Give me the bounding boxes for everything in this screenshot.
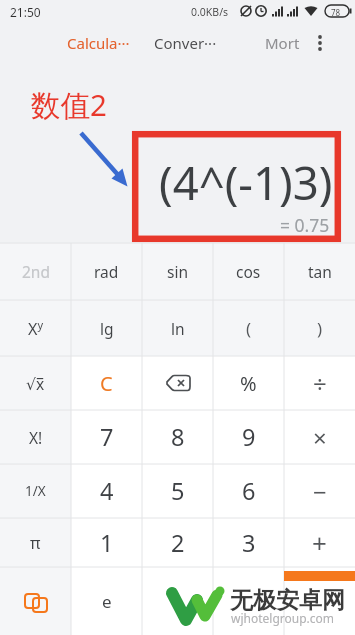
button[interactable]: 4 bbox=[71, 464, 142, 518]
button[interactable] bbox=[308, 28, 332, 58]
staticText: π bbox=[30, 532, 41, 554]
button[interactable]: ln bbox=[142, 300, 213, 356]
staticText: 3 bbox=[242, 527, 256, 559]
staticText: ) bbox=[317, 317, 323, 340]
staticText: 5 bbox=[171, 475, 185, 507]
button[interactable]: − bbox=[284, 464, 355, 518]
staticText: ( bbox=[246, 317, 252, 340]
button[interactable]: X! bbox=[0, 410, 71, 464]
button[interactable]: π bbox=[0, 518, 71, 567]
staticText: Xy bbox=[28, 317, 43, 339]
staticText: 6 bbox=[242, 475, 256, 507]
staticText: 78 bbox=[331, 7, 341, 18]
button[interactable]: 9 bbox=[213, 410, 284, 464]
button[interactable]: lg bbox=[71, 300, 142, 356]
button[interactable]: tan bbox=[284, 243, 355, 300]
button[interactable]: + bbox=[284, 518, 355, 567]
button[interactable]: Conver··· bbox=[140, 28, 230, 58]
staticText: ln bbox=[171, 318, 185, 339]
button[interactable]: rad bbox=[71, 243, 142, 300]
staticText: 2 bbox=[171, 527, 185, 559]
button[interactable]: cos bbox=[213, 243, 284, 300]
staticText: 21:50 bbox=[10, 4, 41, 20]
staticText: Conver··· bbox=[154, 33, 217, 53]
button[interactable]: C bbox=[71, 356, 142, 410]
staticText: Calcula··· bbox=[67, 33, 130, 53]
staticText: − bbox=[313, 475, 327, 508]
button[interactable]: 1 bbox=[71, 518, 142, 567]
button[interactable]: e bbox=[71, 567, 142, 635]
staticText: 1 bbox=[100, 527, 114, 559]
staticText: (4^(-1)3) bbox=[159, 151, 333, 213]
button[interactable]: sin bbox=[142, 243, 213, 300]
staticText: Mort bbox=[265, 33, 300, 53]
button[interactable]: 6 bbox=[213, 464, 284, 518]
staticText: 9 bbox=[242, 421, 256, 453]
staticText: C bbox=[100, 370, 113, 397]
button[interactable]: Xy bbox=[0, 300, 71, 356]
button[interactable] bbox=[0, 567, 71, 635]
button[interactable]: Calcula··· bbox=[48, 28, 148, 58]
staticText: × bbox=[313, 421, 327, 454]
staticText: 4 bbox=[100, 475, 114, 507]
button[interactable]: % bbox=[213, 356, 284, 410]
button[interactable]: 8 bbox=[142, 410, 213, 464]
staticText: = 0.75 bbox=[280, 213, 330, 237]
staticText: 0.0KB/s bbox=[191, 5, 229, 19]
button[interactable]: ( bbox=[213, 300, 284, 356]
staticText: % bbox=[240, 370, 257, 397]
button[interactable]: ÷ bbox=[284, 356, 355, 410]
staticText: tan bbox=[308, 261, 332, 282]
staticText: 1/X bbox=[25, 482, 46, 500]
staticText: cos bbox=[236, 261, 261, 282]
staticText: e bbox=[102, 590, 112, 613]
staticText: lg bbox=[100, 318, 114, 339]
staticText: 无极安卓网 bbox=[230, 586, 345, 615]
button[interactable]: 3 bbox=[213, 518, 284, 567]
staticText: 7 bbox=[100, 421, 114, 453]
button[interactable]: 1/X bbox=[0, 464, 71, 518]
staticText: + bbox=[312, 525, 327, 560]
staticText: sin bbox=[167, 261, 189, 282]
button[interactable]: 7 bbox=[71, 410, 142, 464]
button[interactable]: √x̅ bbox=[0, 356, 71, 410]
button[interactable]: ) bbox=[284, 300, 355, 356]
staticText: √x̅ bbox=[26, 373, 45, 394]
button[interactable]: 2nd bbox=[0, 243, 71, 300]
staticText: ÷ bbox=[313, 367, 327, 400]
staticText: 2nd bbox=[22, 261, 50, 282]
button[interactable]: 5 bbox=[142, 464, 213, 518]
staticText: wjhotelgroup.com bbox=[231, 610, 335, 626]
button[interactable]: Mort bbox=[252, 28, 312, 58]
button[interactable]: × bbox=[284, 410, 355, 464]
button[interactable]: 2 bbox=[142, 518, 213, 567]
staticText: X! bbox=[29, 427, 43, 448]
staticText: 数值2 bbox=[31, 84, 107, 124]
button[interactable] bbox=[142, 356, 213, 410]
staticText: 8 bbox=[171, 421, 185, 453]
staticText: rad bbox=[94, 261, 119, 282]
